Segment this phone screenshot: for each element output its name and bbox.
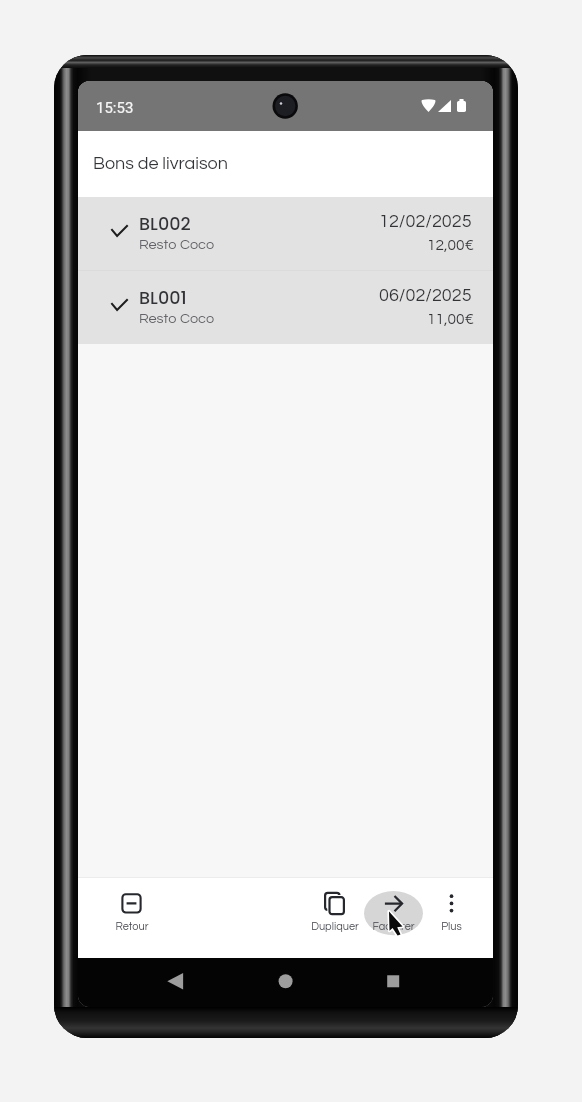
button[interactable]: Plus xyxy=(421,878,482,958)
button[interactable]: Retour xyxy=(101,878,162,958)
staticText: BL001 xyxy=(139,286,187,311)
staticText: 06/02/2025 xyxy=(379,286,472,305)
button[interactable]: Facturer xyxy=(363,878,424,958)
staticText: BL002 xyxy=(139,212,191,237)
staticText: Retour xyxy=(115,921,149,932)
staticText: Facturer xyxy=(372,921,415,932)
staticText: Resto Coco xyxy=(139,237,215,252)
button[interactable]: BL001 xyxy=(78,271,493,344)
staticText: Dupliquer xyxy=(311,921,359,932)
staticText: Plus xyxy=(441,921,462,932)
staticText: 11,00€ xyxy=(427,311,475,327)
button[interactable]: Dupliquer xyxy=(304,878,365,958)
staticText: 12/02/2025 xyxy=(379,212,472,231)
staticText: Bons de livraison xyxy=(93,154,228,173)
button[interactable]: BL002 xyxy=(78,197,493,270)
staticText: 15:53 xyxy=(96,99,134,117)
staticText: 12,00€ xyxy=(427,237,475,253)
staticText: Resto Coco xyxy=(139,311,215,326)
